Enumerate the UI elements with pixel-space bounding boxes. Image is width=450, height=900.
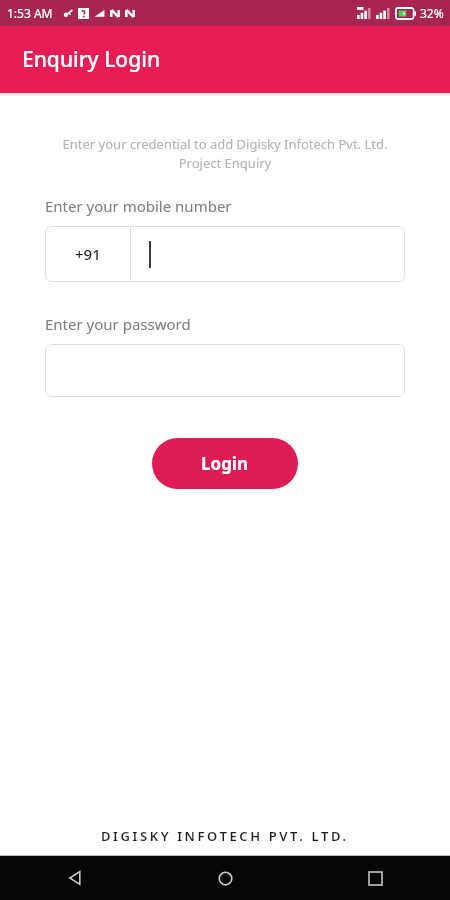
staticText: 1:53 AM <box>7 5 53 21</box>
staticText: Enter your mobile number <box>45 196 232 216</box>
staticText: Login <box>201 452 249 475</box>
staticText: 32% <box>420 5 444 21</box>
staticText: Enquiry Login <box>22 45 161 74</box>
button[interactable]: +91 <box>45 226 405 282</box>
button[interactable] <box>45 344 405 397</box>
button[interactable]: Back <box>0 856 150 900</box>
staticText: Enter your password <box>45 314 191 334</box>
staticText: DIGISKY INFOTECH PVT. LTD. <box>101 827 349 845</box>
staticText: +91 <box>75 244 101 264</box>
button[interactable]: Recent apps <box>300 856 450 900</box>
button[interactable]: Home <box>150 856 300 900</box>
button[interactable]: Login <box>152 438 298 489</box>
staticText: Enter your credential to add Digisky Inf… <box>30 135 420 172</box>
